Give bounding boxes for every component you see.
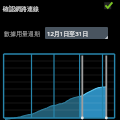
- button[interactable]: Done: [101, 0, 120, 15]
- button[interactable]: 12月1日至31日: [45, 27, 108, 39]
- staticText: 數據用量週期: [4, 30, 40, 38]
- staticText: 確認網路連線: [3, 5, 39, 13]
- staticText: 12月1日至31日: [47, 30, 89, 38]
